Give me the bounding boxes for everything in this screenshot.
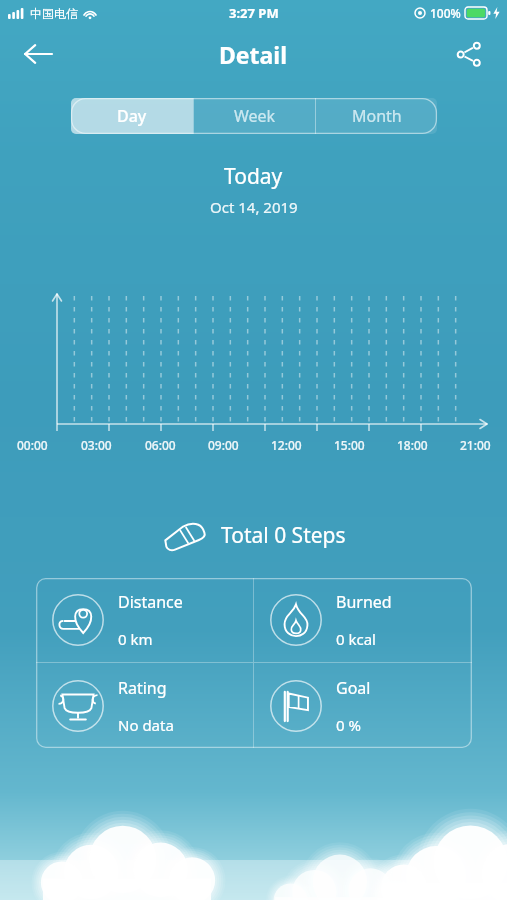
button[interactable]: Distance [36,578,253,662]
staticText: 0 % [336,715,361,735]
staticText: 0 kcal [336,629,376,649]
staticText: No data [118,715,174,735]
button[interactable]: Week [194,98,315,134]
staticText: 15:00 [334,437,365,453]
staticText: Detail [219,39,288,70]
button[interactable]: Day [71,98,193,134]
staticText: Week [234,105,276,127]
staticText: Distance [118,591,183,613]
staticText: Total 0 Steps [221,521,346,550]
button[interactable]: Back [14,30,62,78]
staticText: Today [224,162,283,191]
staticText: 18:00 [397,437,428,453]
staticText: Day [117,105,147,127]
staticText: Oct 14, 2019 [210,197,298,217]
staticText: 0 km [118,629,153,649]
staticText: 00:00 [17,437,48,453]
staticText: Rating [118,677,167,699]
staticText: 100% [430,5,461,21]
button[interactable]: Goal [254,663,472,748]
button[interactable]: Share [445,30,493,78]
staticText: 3:27 PM [229,4,279,22]
staticText: Burned [336,591,392,613]
staticText: 03:00 [81,437,112,453]
button[interactable]: Month [316,98,437,134]
staticText: 06:00 [145,437,176,453]
staticText: Goal [336,677,371,699]
button[interactable]: Rating [36,663,253,748]
staticText: 中国电信 [30,6,78,21]
staticText: Month [352,105,402,127]
staticText: 09:00 [208,437,239,453]
button[interactable]: Burned [254,578,472,662]
staticText: 12:00 [271,437,302,453]
staticText: 21:00 [460,437,491,453]
